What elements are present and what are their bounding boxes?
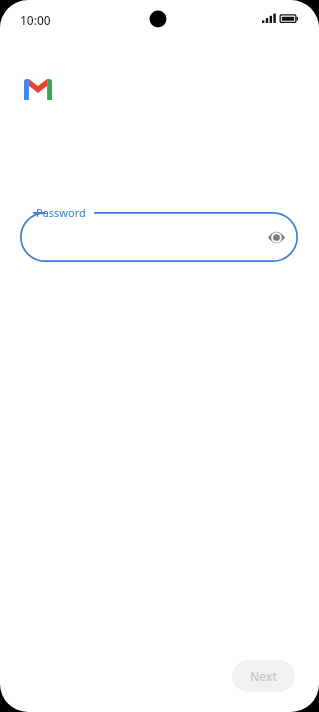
staticText: Next <box>250 668 278 684</box>
staticText: Password <box>36 205 86 220</box>
button[interactable]: Next <box>232 660 295 692</box>
staticText: 10:00 <box>20 12 51 28</box>
button[interactable]: Password <box>20 212 298 262</box>
button[interactable]: Show password <box>262 223 290 251</box>
